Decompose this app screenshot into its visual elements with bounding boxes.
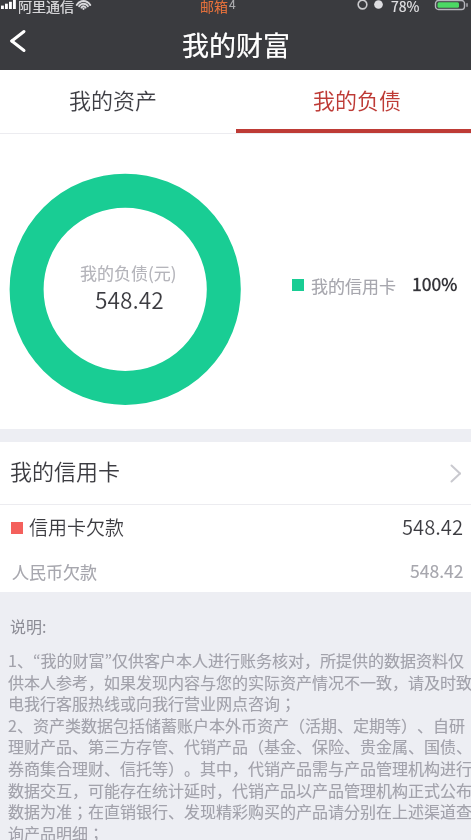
- staticText: 我的负债: [313, 83, 402, 115]
- staticText: 我的负债(元): [80, 260, 177, 285]
- staticText: 阿里通信: [18, 0, 74, 14]
- staticText: 我的信用卡: [311, 273, 396, 298]
- button[interactable]: 我的资产: [0, 70, 236, 134]
- staticText: 数据交互，可能存在统计延时，代销产品以产品管理机构正式公布: [8, 778, 471, 801]
- staticText: 人民币欠款: [12, 559, 97, 584]
- staticText: 我的财富: [182, 25, 290, 64]
- staticText: 1、“我的财富”仅供客户本人进行账务核对，所提供的数据资料仅: [8, 648, 465, 671]
- button[interactable]: Back: [0, 18, 44, 70]
- staticText: 信用卡欠款: [29, 513, 125, 541]
- staticText: 供本人参考，如果发现内容与您的实际资产情况不一致，请及时致: [8, 670, 471, 693]
- button[interactable]: 我的负债: [236, 70, 471, 134]
- staticText: 548.42: [410, 558, 464, 583]
- staticText: 电我行客服热线或向我行营业网点咨询；: [8, 691, 297, 714]
- staticText: 询产品明细；: [8, 821, 105, 840]
- staticText: 100%: [412, 271, 458, 296]
- staticText: 4: [229, 0, 236, 12]
- staticText: 我的资产: [69, 83, 158, 115]
- other: Open my credit card: [450, 464, 462, 483]
- staticText: 说明:: [10, 614, 47, 637]
- staticText: 理财产品、第三方存管、代销产品（基金、保险、贵金属、国债、: [8, 734, 471, 757]
- staticText: 我的信用卡: [10, 454, 121, 486]
- staticText: 数据为准；在直销银行、发现精彩购买的产品请分别在上述渠道查: [8, 799, 471, 822]
- staticText: 548.42: [402, 512, 464, 541]
- staticText: 2、资产类数据包括储蓄账户本外币资产（活期、定期等）、自研: [8, 713, 465, 736]
- staticText: 邮箱: [200, 0, 228, 14]
- staticText: 78%: [391, 0, 420, 14]
- staticText: 548.42: [95, 283, 164, 316]
- staticText: 券商集合理财、信托等）。其中，代销产品需与产品管理机构进行: [8, 756, 471, 779]
- button[interactable]: 我的信用卡: [0, 442, 471, 504]
